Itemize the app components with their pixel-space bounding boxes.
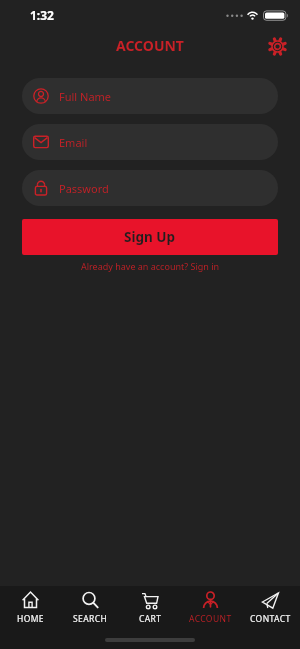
staticText: HOME — [17, 613, 44, 625]
button[interactable]: Full Name — [22, 78, 278, 114]
staticText: Already have an account? Sign in — [81, 260, 220, 272]
button[interactable]: SEARCH — [60, 590, 120, 625]
staticText: Sign Up — [124, 228, 176, 246]
staticText: Full Name — [59, 89, 112, 104]
button[interactable]: Already have an account? Sign in — [75, 257, 226, 275]
button[interactable]: Password — [22, 170, 278, 206]
staticText: Email — [59, 135, 88, 150]
staticText: SEARCH — [73, 613, 108, 625]
staticText: CART — [139, 613, 162, 625]
button[interactable]: ACCOUNT — [180, 590, 240, 625]
staticText: 1:32 — [30, 7, 54, 23]
button[interactable]: Email — [22, 124, 278, 160]
button[interactable] — [267, 36, 287, 56]
button[interactable]: CONTACT — [240, 590, 300, 625]
staticText: Password — [59, 181, 109, 196]
button[interactable]: Sign Up — [22, 219, 278, 255]
button[interactable]: HOME — [0, 590, 60, 625]
staticText: ACCOUNT — [116, 36, 184, 55]
staticText: ACCOUNT — [189, 613, 232, 625]
button[interactable]: CART — [120, 590, 180, 625]
staticText: CONTACT — [250, 613, 291, 625]
